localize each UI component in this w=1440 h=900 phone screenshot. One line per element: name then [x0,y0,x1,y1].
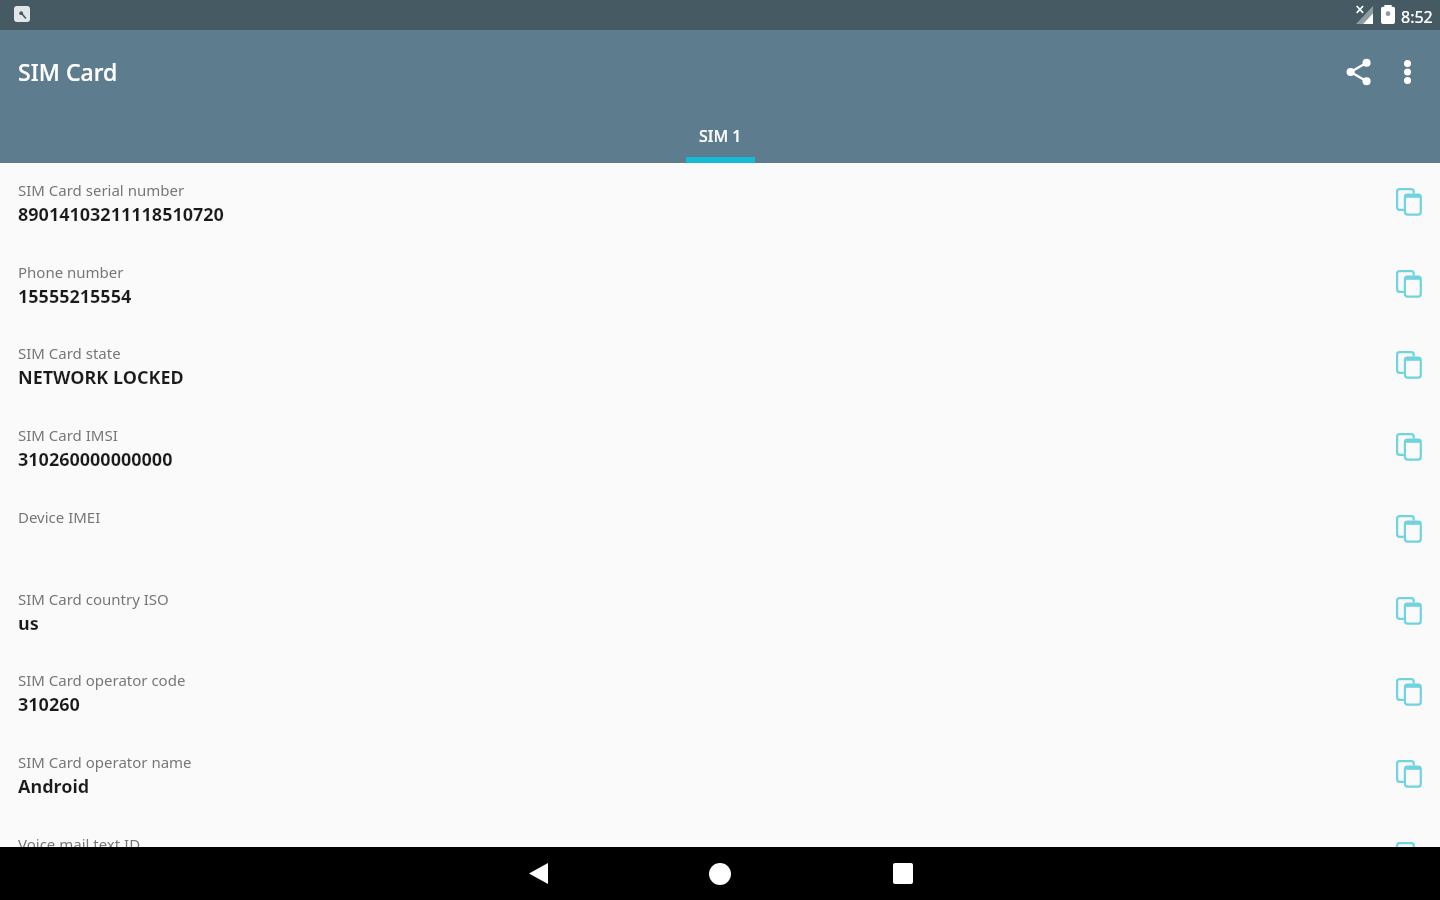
button[interactable]: SIM Card state [0,326,1440,408]
staticText: SIM Card operator name [18,752,192,772]
button[interactable]: Device IMEI [0,490,1440,572]
button[interactable]: Copy [1378,171,1440,233]
button[interactable]: Copy [1378,498,1440,560]
staticText: NETWORK LOCKED [18,365,184,390]
button[interactable]: Copy [1378,416,1440,478]
button[interactable]: Copy [1378,825,1440,847]
staticText: Device IMEI [18,507,101,527]
staticText: 310260000000000 [18,447,173,472]
staticText: 15555215554 [18,284,132,309]
button[interactable]: Back [510,847,566,900]
button[interactable]: SIM Card serial number [0,163,1440,245]
button[interactable]: Copy [1378,334,1440,396]
button[interactable]: SIM Card country ISO [0,572,1440,654]
staticText: 89014103211118510720 [18,202,224,227]
button[interactable]: SIM Card operator name [0,735,1440,817]
button[interactable]: Phone number [0,245,1440,327]
button[interactable]: SIM Card IMSI [0,408,1440,490]
staticText: 310260 [18,692,80,717]
button[interactable]: Copy [1378,661,1440,723]
button[interactable]: Voice mail text ID [0,817,1440,847]
button[interactable]: Copy [1378,253,1440,315]
button[interactable]: Home [692,847,748,900]
staticText: SIM 1 [699,125,742,147]
button[interactable]: Recents [875,847,931,900]
staticText: SIM Card operator code [18,670,186,690]
staticText: SIM Card state [18,343,121,363]
button[interactable]: Copy [1378,743,1440,805]
staticText: SIM Card country ISO [18,589,169,609]
button[interactable]: More options [1376,30,1438,113]
staticText: us [18,611,39,636]
staticText: 8:52 [1401,6,1433,28]
button[interactable]: SIM 1 [686,113,755,163]
button[interactable]: SIM Card operator code [0,653,1440,735]
button[interactable]: Copy [1378,580,1440,642]
staticText: Voice mail text ID [18,834,141,847]
staticText: SIM Card serial number [18,180,185,200]
staticText: SIM Card IMSI [18,425,118,445]
staticText: SIM Card [18,56,118,87]
staticText: Android [18,774,90,799]
button[interactable]: Share [1328,30,1390,113]
staticText: Phone number [18,262,124,282]
